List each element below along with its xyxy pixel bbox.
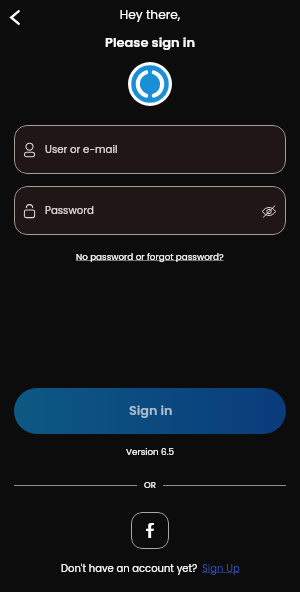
button[interactable]: No password or forgot password? <box>72 249 228 265</box>
staticText: OR <box>144 479 156 491</box>
staticText: Password <box>45 203 94 217</box>
staticText: Please sign in <box>0 33 300 51</box>
staticText: Sign in <box>129 402 173 420</box>
staticText: User or e-mail <box>45 142 118 156</box>
button[interactable]: Sign Up <box>202 561 240 575</box>
staticText: Version 6.5 <box>0 446 300 458</box>
button[interactable]: Show password <box>261 203 277 219</box>
button[interactable]: Sign in <box>14 388 286 434</box>
staticText: Hey there, <box>0 6 300 23</box>
button[interactable]: User or e-mail <box>14 125 286 174</box>
button[interactable]: Back <box>4 6 26 28</box>
button[interactable]: Sign in with Facebook <box>131 512 169 549</box>
staticText: Don't have an account yet? <box>61 561 198 575</box>
button[interactable]: Password <box>14 186 286 235</box>
